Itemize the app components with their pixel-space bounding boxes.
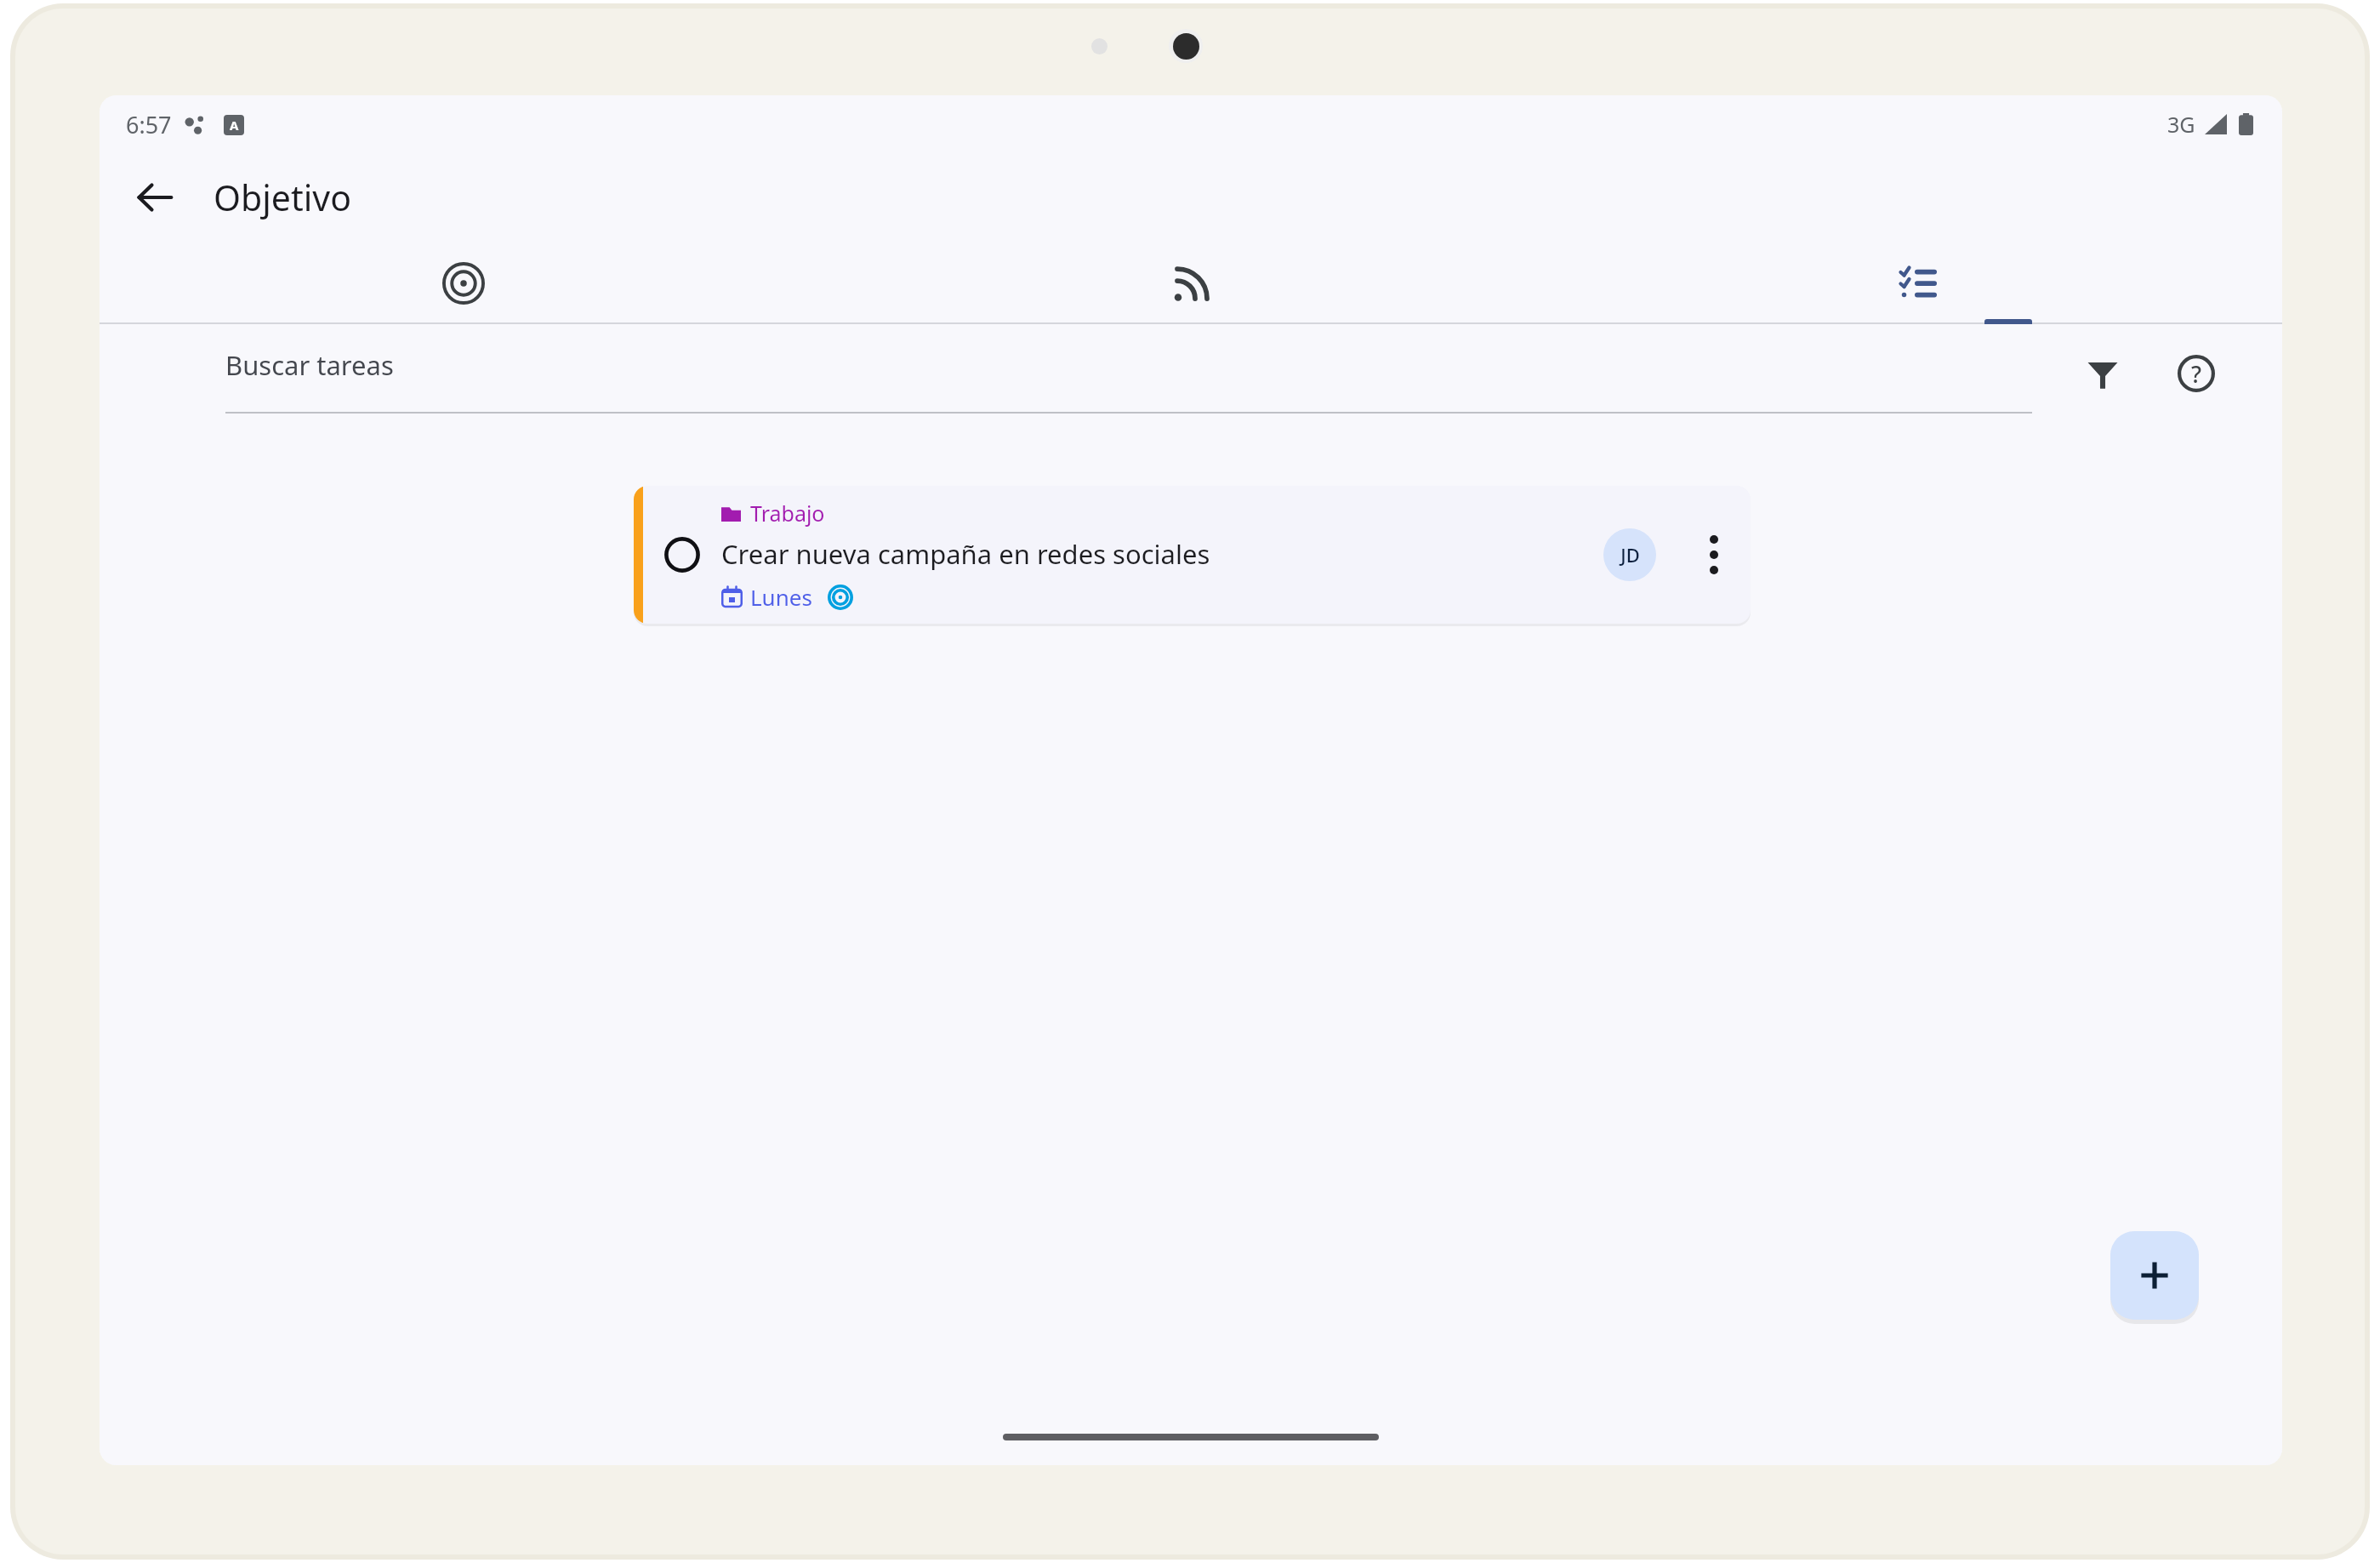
button[interactable]: Back (118, 161, 191, 234)
staticText: Crear nueva campaña en redes sociales (721, 536, 1210, 572)
button[interactable]: Tareas (1555, 242, 2282, 324)
button[interactable]: JD (1603, 528, 1656, 581)
staticText: ? (2191, 358, 2202, 390)
staticText: Lunes (750, 582, 812, 612)
button[interactable]: Objetivos (100, 242, 828, 324)
button[interactable]: Complete task (658, 530, 707, 579)
button[interactable]: Filter (2066, 337, 2139, 410)
button[interactable]: Add task (2110, 1231, 2199, 1320)
button[interactable]: Complete task (634, 486, 1751, 624)
staticText: 6:57 (126, 109, 172, 140)
staticText: A (230, 117, 239, 134)
staticText: Buscar tareas (225, 347, 394, 383)
staticText: Objetivo (214, 174, 351, 221)
button[interactable]: Buscar tareas (225, 334, 2032, 414)
button[interactable]: Help (2160, 337, 2233, 410)
button[interactable]: More options (1683, 524, 1745, 585)
staticText: 3G (2167, 110, 2195, 139)
staticText: Trabajo (750, 499, 825, 528)
staticText: JD (1620, 542, 1640, 568)
button[interactable]: Feed (828, 242, 1555, 324)
